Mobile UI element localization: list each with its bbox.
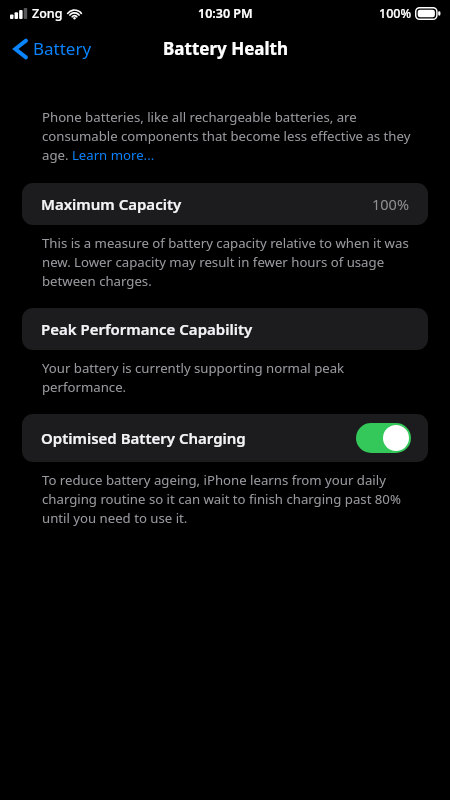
staticText: 100% (372, 194, 409, 214)
staticText: Phone batteries, like all rechargeable b… (42, 108, 422, 163)
staticText: Your battery is currently supporting nor… (42, 359, 422, 395)
staticText: Optimised Battery Charging (41, 428, 246, 448)
button[interactable]: Maximum Capacity (22, 183, 428, 225)
button[interactable]: Optimised Battery Charging toggle (356, 423, 411, 453)
staticText: 10:30 PM (198, 5, 253, 22)
staticText: 100% (379, 5, 412, 22)
button[interactable]: Back (0, 31, 102, 66)
button[interactable]: Peak Performance Capability (22, 308, 428, 350)
staticText: This is a measure of battery capacity re… (42, 234, 422, 289)
staticText: Peak Performance Capability (41, 319, 253, 339)
staticText: Zong (32, 5, 63, 22)
staticText: Battery Health (163, 37, 288, 60)
button[interactable]: Optimised Battery Charging (22, 414, 428, 462)
staticText: Maximum Capacity (41, 194, 182, 214)
other: Back (14, 39, 27, 59)
staticText: Battery (33, 37, 92, 60)
staticText: To reduce battery ageing, iPhone learns … (42, 471, 422, 526)
